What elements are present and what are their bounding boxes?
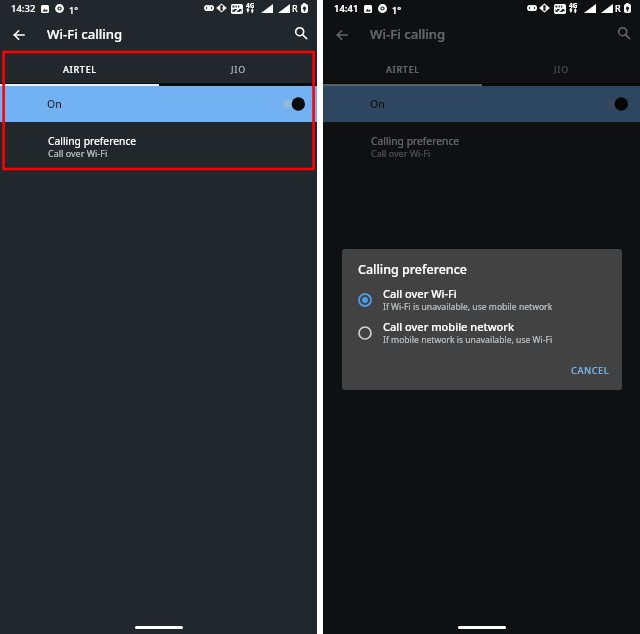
staticText: Calling preference: [371, 134, 460, 148]
button[interactable]: Calling preference: [0, 122, 317, 170]
staticText: 1°: [69, 4, 78, 16]
staticText: Calling preference: [48, 134, 137, 148]
staticText: 1°: [392, 4, 401, 16]
button[interactable]: JIO: [482, 50, 640, 83]
staticText: JIO: [231, 63, 246, 75]
staticText: Call over mobile network: [383, 319, 515, 334]
staticText: R: [292, 2, 298, 14]
staticText: On: [370, 97, 385, 111]
button[interactable]: CANCEL: [557, 357, 622, 384]
button[interactable]: AIRTEL: [0, 50, 159, 83]
staticText: Call over Wi-Fi: [383, 286, 457, 301]
staticText: 14:32: [11, 2, 36, 15]
staticText: R: [615, 2, 621, 14]
staticText: 4G: [246, 1, 255, 10]
staticText: R: [615, 2, 621, 14]
staticText: Calling preference: [358, 261, 468, 278]
button[interactable]: Search: [611, 20, 637, 46]
button[interactable]: Search: [288, 20, 314, 46]
staticText: Wi-Fi calling: [47, 25, 123, 43]
staticText: On: [47, 97, 62, 111]
button[interactable]: Call over Wi-Fi: [342, 283, 622, 316]
staticText: 1°: [392, 4, 401, 16]
staticText: Call over Wi-Fi: [371, 147, 431, 159]
staticText: Wi-Fi calling: [370, 25, 446, 43]
staticText: AIRTEL: [63, 63, 97, 75]
staticText: AIRTEL: [386, 63, 420, 75]
button[interactable]: On: [323, 86, 640, 122]
button[interactable]: Back: [329, 22, 355, 48]
staticText: Call over Wi-Fi: [48, 147, 108, 159]
staticText: 14:41: [334, 2, 359, 15]
button[interactable]: JIO: [159, 50, 318, 83]
staticText: JIO: [554, 63, 569, 75]
staticText: If mobile network is unavailable, use Wi…: [383, 334, 553, 346]
staticText: 4G: [569, 1, 578, 10]
button[interactable]: AIRTEL: [323, 50, 482, 83]
button[interactable]: Back: [6, 22, 32, 48]
button[interactable]: On: [0, 86, 317, 122]
staticText: CANCEL: [571, 364, 610, 377]
staticText: If Wi-Fi is unavailable, use mobile netw…: [383, 301, 553, 313]
staticText: 4G: [569, 1, 578, 10]
button[interactable]: Calling preference: [323, 122, 640, 170]
staticText: 14:41: [334, 2, 359, 15]
button[interactable]: Call over mobile network: [342, 316, 622, 349]
